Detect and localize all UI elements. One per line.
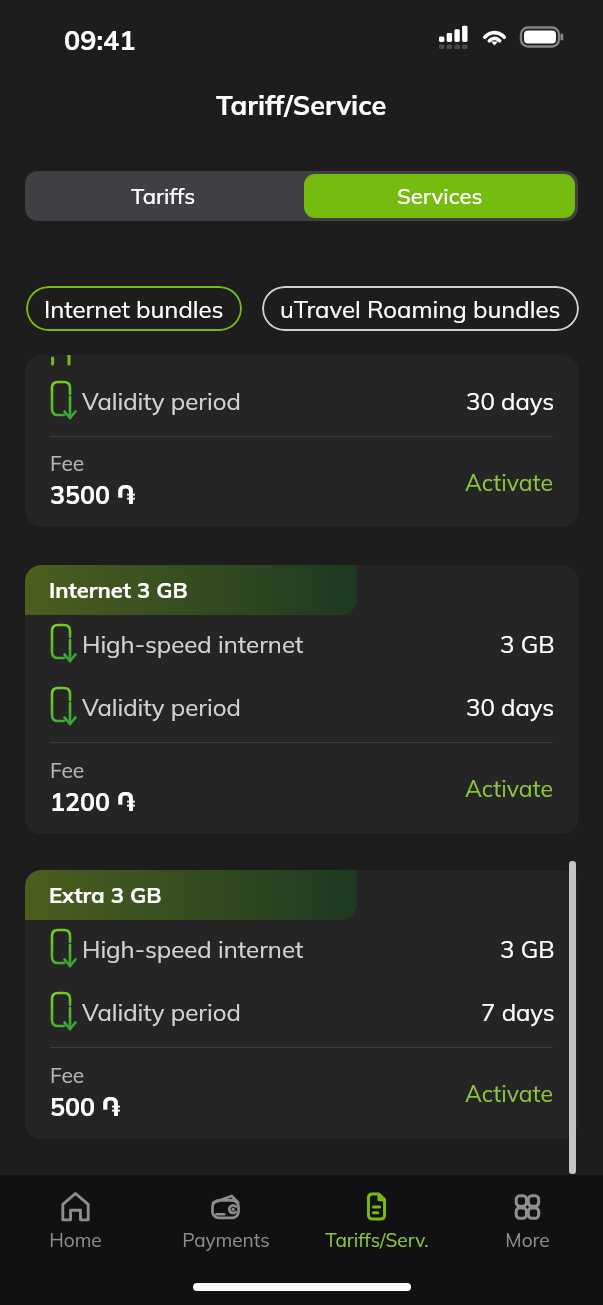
staticText: Extra 3 GB xyxy=(49,881,162,909)
staticText: Fee xyxy=(50,1062,85,1088)
button[interactable]: Activate xyxy=(463,1073,555,1114)
button[interactable]: Extra 3 GB xyxy=(25,870,578,1139)
staticText: 3500 ֏ xyxy=(50,479,136,510)
button[interactable]: Payments xyxy=(150,1191,301,1265)
staticText: Services xyxy=(397,182,483,210)
staticText: 30 days xyxy=(466,386,555,416)
staticText: Validity period xyxy=(82,997,241,1027)
staticText: Payments xyxy=(182,1228,270,1252)
button[interactable]: Services xyxy=(304,174,575,218)
staticText: Activate xyxy=(465,774,553,803)
button[interactable]: Activate xyxy=(463,768,555,809)
button[interactable]: Home xyxy=(0,1191,150,1265)
button[interactable]: Tariffs xyxy=(25,171,301,221)
staticText: Tariffs/Serv. xyxy=(325,1228,429,1252)
staticText: 09:41 xyxy=(64,23,136,57)
staticText: 7 days xyxy=(481,997,555,1027)
other: Tariffs and Services xyxy=(361,1191,392,1222)
staticText: Activate xyxy=(465,1079,553,1108)
staticText: Tariff/Service xyxy=(216,88,387,122)
staticText: 3 GB xyxy=(500,934,555,964)
staticText: 500 ֏ xyxy=(50,1091,121,1122)
staticText: 3 GB xyxy=(500,629,555,659)
staticText: 30 days xyxy=(466,692,555,722)
staticText: uTravel Roaming bundles xyxy=(280,294,561,324)
staticText: High-speed internet xyxy=(82,629,304,659)
staticText: Activate xyxy=(465,468,553,497)
staticText: Fee xyxy=(50,757,85,783)
staticText: Tariffs xyxy=(131,182,196,210)
button[interactable]: Internet bundles xyxy=(26,286,242,331)
staticText: Validity period xyxy=(82,386,241,416)
other: Payments xyxy=(210,1191,241,1222)
staticText: Fee xyxy=(50,450,85,476)
button[interactable]: Activate xyxy=(463,462,555,503)
button[interactable]: Validity period xyxy=(25,355,578,527)
button[interactable]: Tariffs and Services xyxy=(301,1191,452,1265)
button[interactable]: Internet 3 GB xyxy=(25,565,578,834)
staticText: Internet bundles xyxy=(44,294,224,324)
staticText: 1200 ֏ xyxy=(50,786,136,817)
staticText: High-speed internet xyxy=(82,934,304,964)
other: Home xyxy=(60,1191,91,1222)
staticText: Internet 3 GB xyxy=(49,576,188,604)
staticText: Validity period xyxy=(82,692,241,722)
staticText: Home xyxy=(49,1228,102,1252)
button[interactable]: uTravel Roaming bundles xyxy=(262,286,579,331)
button[interactable]: More xyxy=(452,1191,603,1265)
other: More xyxy=(512,1191,543,1222)
staticText: More xyxy=(505,1228,550,1252)
